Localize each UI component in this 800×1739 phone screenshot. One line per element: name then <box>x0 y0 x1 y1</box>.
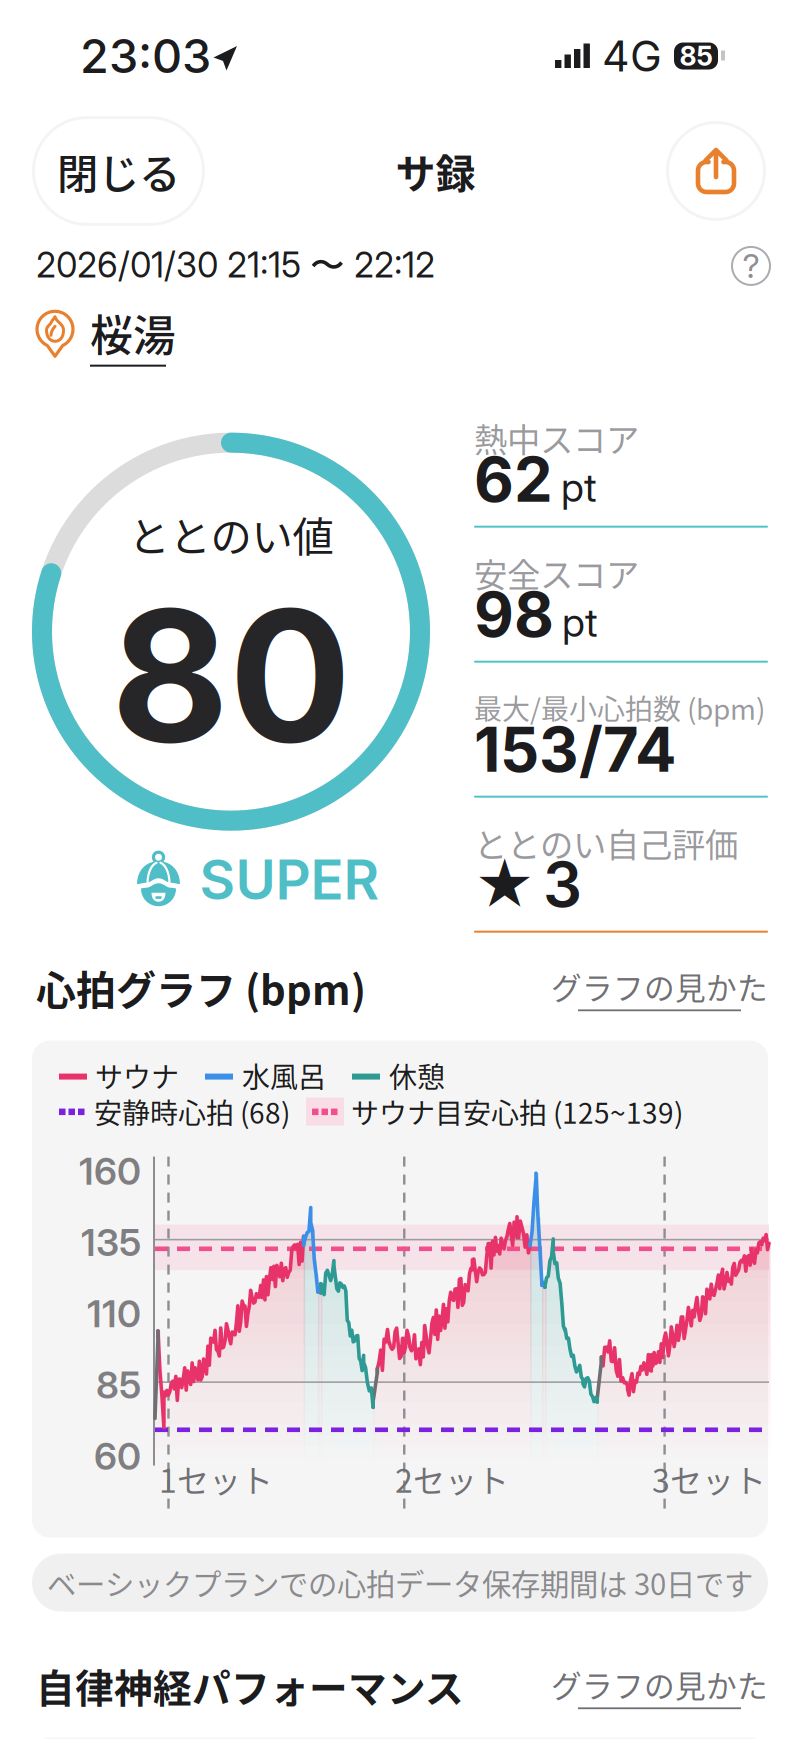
staticText: サウナ <box>95 1055 179 1096</box>
button[interactable]: グラフの見かた <box>551 964 768 1011</box>
staticText: ★ <box>474 850 535 921</box>
staticText: 98 <box>474 577 554 652</box>
staticText: 85 <box>96 1362 141 1407</box>
staticText: 安静時心拍 (68) <box>94 1091 290 1132</box>
staticText: 桜湯 <box>90 302 176 364</box>
staticText: ベーシックプランでの心拍データ保存期間は 30日です <box>47 1561 753 1604</box>
button[interactable]: 共有 <box>666 121 766 221</box>
staticText: 2026/01/30 21:15 〜 22:12 <box>36 244 435 288</box>
staticText: 最大/最小心拍数 (bpm) <box>474 687 765 728</box>
button[interactable]: 閉じる <box>32 116 205 226</box>
button[interactable]: グラフの見かた <box>551 1662 768 1709</box>
staticText: サウナ目安心拍 (125~139) <box>351 1091 683 1132</box>
staticText: 1セット <box>159 1456 273 1502</box>
staticText: サ録 <box>395 142 475 200</box>
staticText: 心拍グラフ (bpm) <box>36 959 366 1017</box>
staticText: 4G <box>602 30 662 82</box>
staticText: pt <box>561 463 597 511</box>
staticText: 60 <box>94 1434 141 1479</box>
staticText: 熱中スコア <box>474 413 639 462</box>
staticText: 水風呂 <box>242 1055 326 1096</box>
staticText: 153/74 <box>474 712 676 787</box>
button[interactable]: 桜湯 <box>0 288 800 367</box>
staticText: 3セット <box>652 1456 766 1502</box>
staticText: 80 <box>111 566 351 785</box>
staticText: 休憩 <box>389 1055 445 1096</box>
staticText: ととのい値 <box>128 504 333 564</box>
staticText: 110 <box>87 1291 141 1336</box>
staticText: グラフの見かた <box>551 1662 768 1706</box>
staticText: 23:03 <box>80 28 211 84</box>
staticText: グラフの見かた <box>551 964 768 1008</box>
staticText: SUPER <box>199 847 379 913</box>
staticText: 62 <box>474 442 553 517</box>
staticText: 2セット <box>395 1456 509 1502</box>
staticText: 160 <box>79 1149 141 1194</box>
staticText: 135 <box>81 1220 141 1265</box>
staticText: 安全スコア <box>474 548 639 597</box>
staticText: ? <box>742 246 759 286</box>
staticText: 自律神経パフォーマンス <box>36 1658 464 1714</box>
staticText: 85 <box>679 40 712 72</box>
staticText: 3 <box>543 847 582 922</box>
staticText: 閉じる <box>57 141 180 201</box>
staticText: pt <box>562 598 598 646</box>
button[interactable]: ヘルプ <box>732 247 770 285</box>
staticText: ととのい自己評価 <box>474 818 738 867</box>
